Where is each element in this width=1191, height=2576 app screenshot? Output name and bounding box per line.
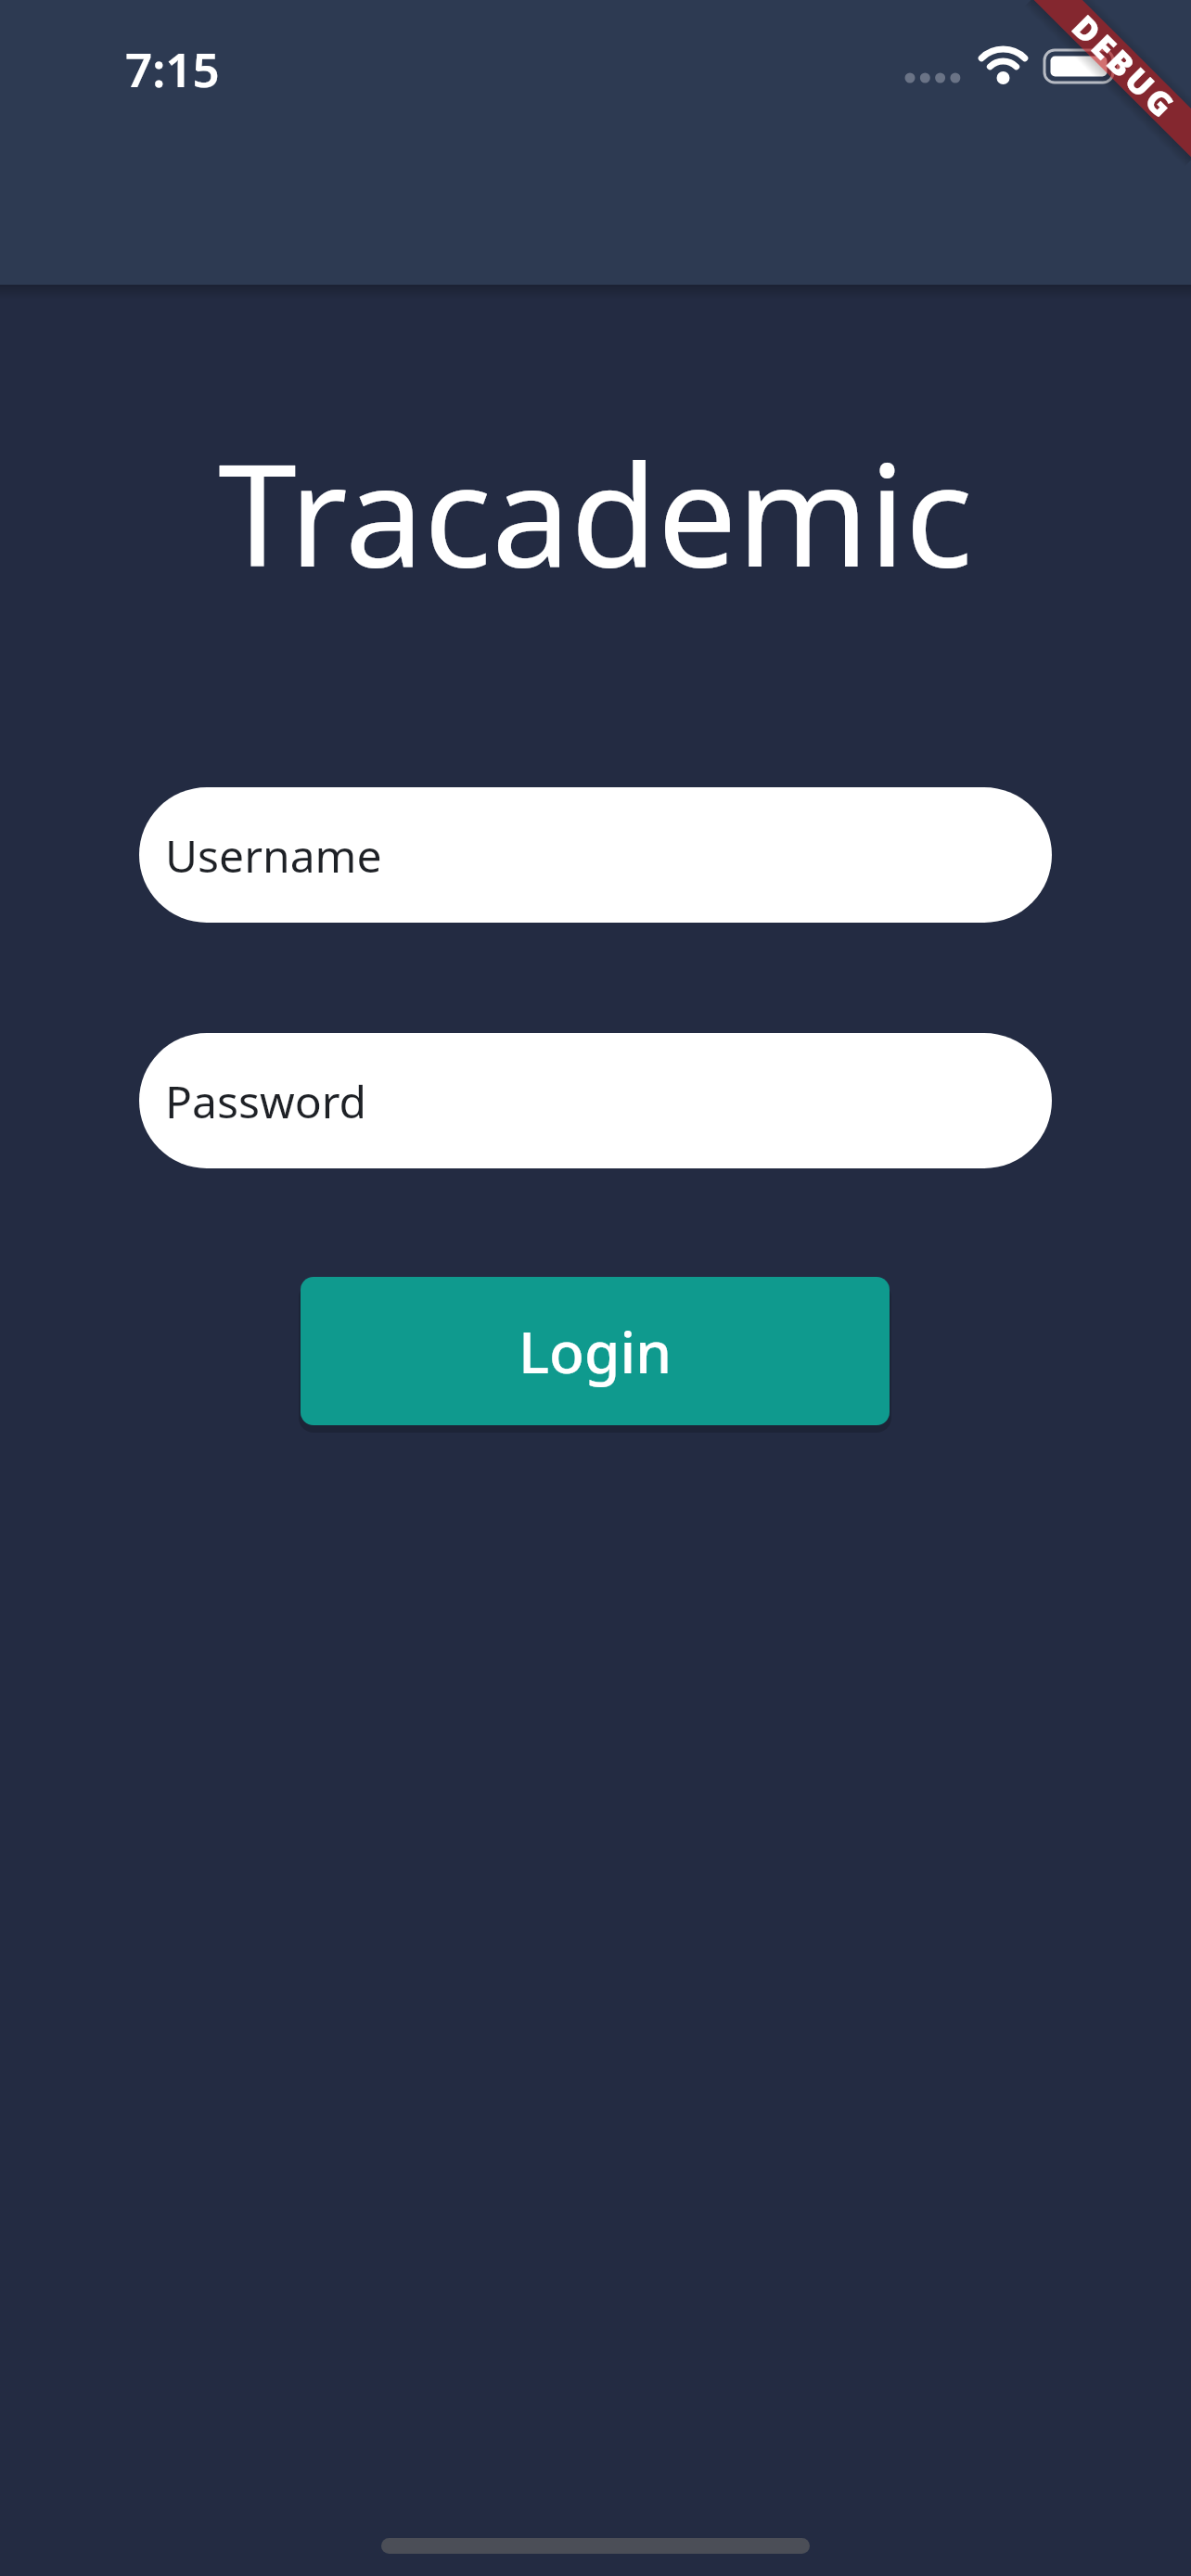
staticText: Login (519, 1312, 672, 1390)
staticText: 7:15 (125, 36, 220, 100)
staticText: Password (165, 1071, 367, 1131)
button[interactable]: Username (139, 787, 1052, 923)
staticText: DEBUG (1063, 5, 1186, 129)
button[interactable]: Login (301, 1277, 890, 1425)
staticText: Username (165, 825, 382, 886)
staticText: Tracademic (0, 416, 1191, 608)
button[interactable]: Password (139, 1033, 1052, 1168)
